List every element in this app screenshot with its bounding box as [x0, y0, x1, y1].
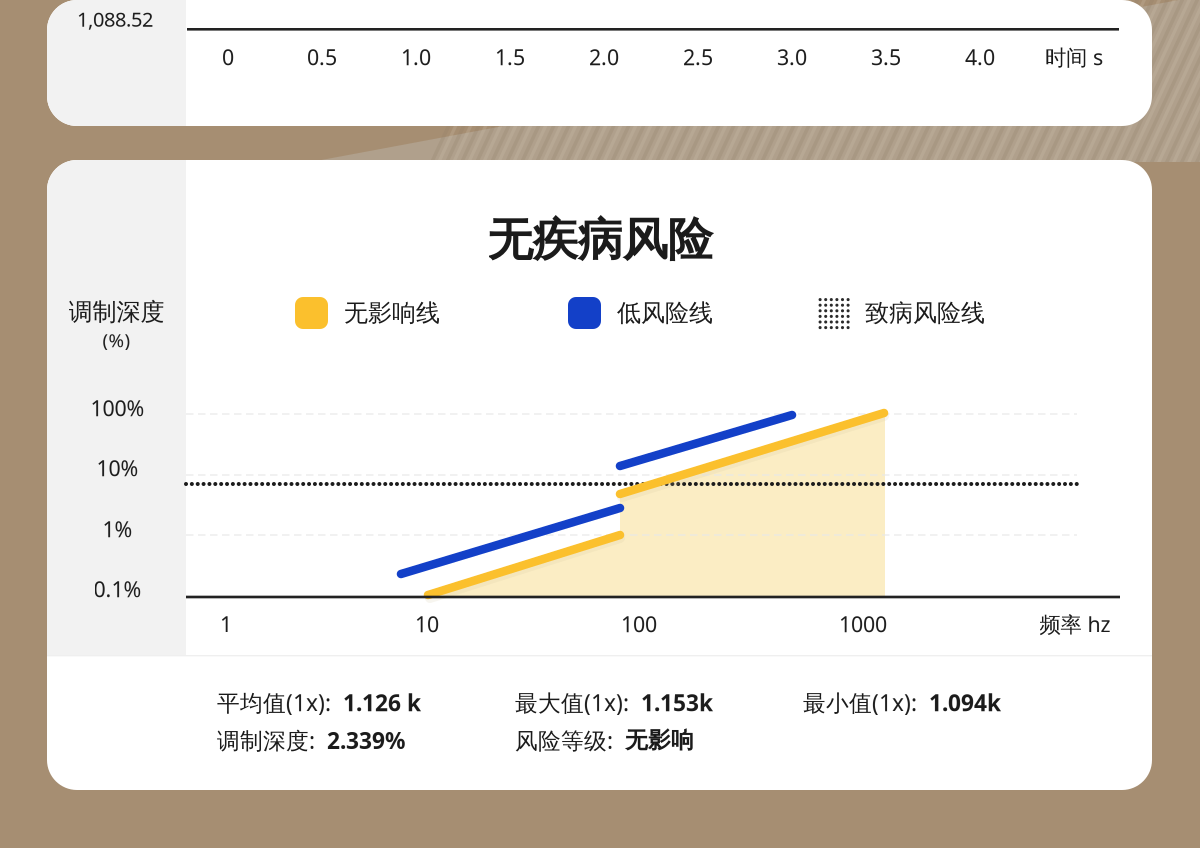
staticText: 1.153k — [641, 687, 713, 718]
staticText: 1 — [220, 609, 232, 639]
staticText: 1,088.52 — [77, 5, 153, 33]
staticText: 1000 — [839, 609, 887, 639]
staticText: 1.094k — [929, 687, 1001, 718]
button[interactable]: 致病风险线 — [818, 296, 998, 330]
staticText: 1.126 k — [343, 687, 421, 718]
staticText: 平均值(1x): — [217, 687, 343, 718]
button[interactable]: 低风险线 — [568, 296, 714, 330]
staticText: 时间 s — [1045, 42, 1103, 72]
staticText: 最小值(1x): — [803, 687, 929, 718]
staticText: 0 — [222, 42, 234, 72]
staticText: 低风险线 — [617, 298, 713, 328]
staticText: 致病风险线 — [865, 298, 985, 328]
staticText: 1.0 — [401, 42, 431, 72]
staticText: 调制深度: — [217, 725, 327, 756]
staticText: 100% — [90, 393, 144, 423]
staticText: 频率 hz — [1039, 609, 1110, 639]
staticText: 1% — [102, 514, 132, 544]
staticText: 无影响 — [625, 726, 694, 755]
staticText: 2.5 — [683, 42, 713, 72]
staticText: (%) — [102, 327, 130, 353]
staticText: 无疾病风险 — [487, 211, 712, 268]
staticText: 1.5 — [495, 42, 525, 72]
staticText: 风险等级: — [515, 725, 625, 756]
staticText: 最大值(1x): — [515, 687, 641, 718]
staticText: 无影响线 — [344, 298, 440, 328]
staticText: 0.1% — [93, 574, 141, 604]
staticText: 10% — [96, 453, 138, 483]
staticText: 3.0 — [777, 42, 807, 72]
staticText: 10 — [415, 609, 439, 639]
staticText: 4.0 — [965, 42, 995, 72]
staticText: 3.5 — [871, 42, 901, 72]
staticText: 2.0 — [589, 42, 619, 72]
staticText: 0.5 — [307, 42, 337, 72]
staticText: 100 — [621, 609, 657, 639]
staticText: 调制深度 — [68, 297, 164, 327]
button[interactable]: 无影响线 — [295, 296, 441, 330]
staticText: 2.339% — [327, 725, 405, 756]
